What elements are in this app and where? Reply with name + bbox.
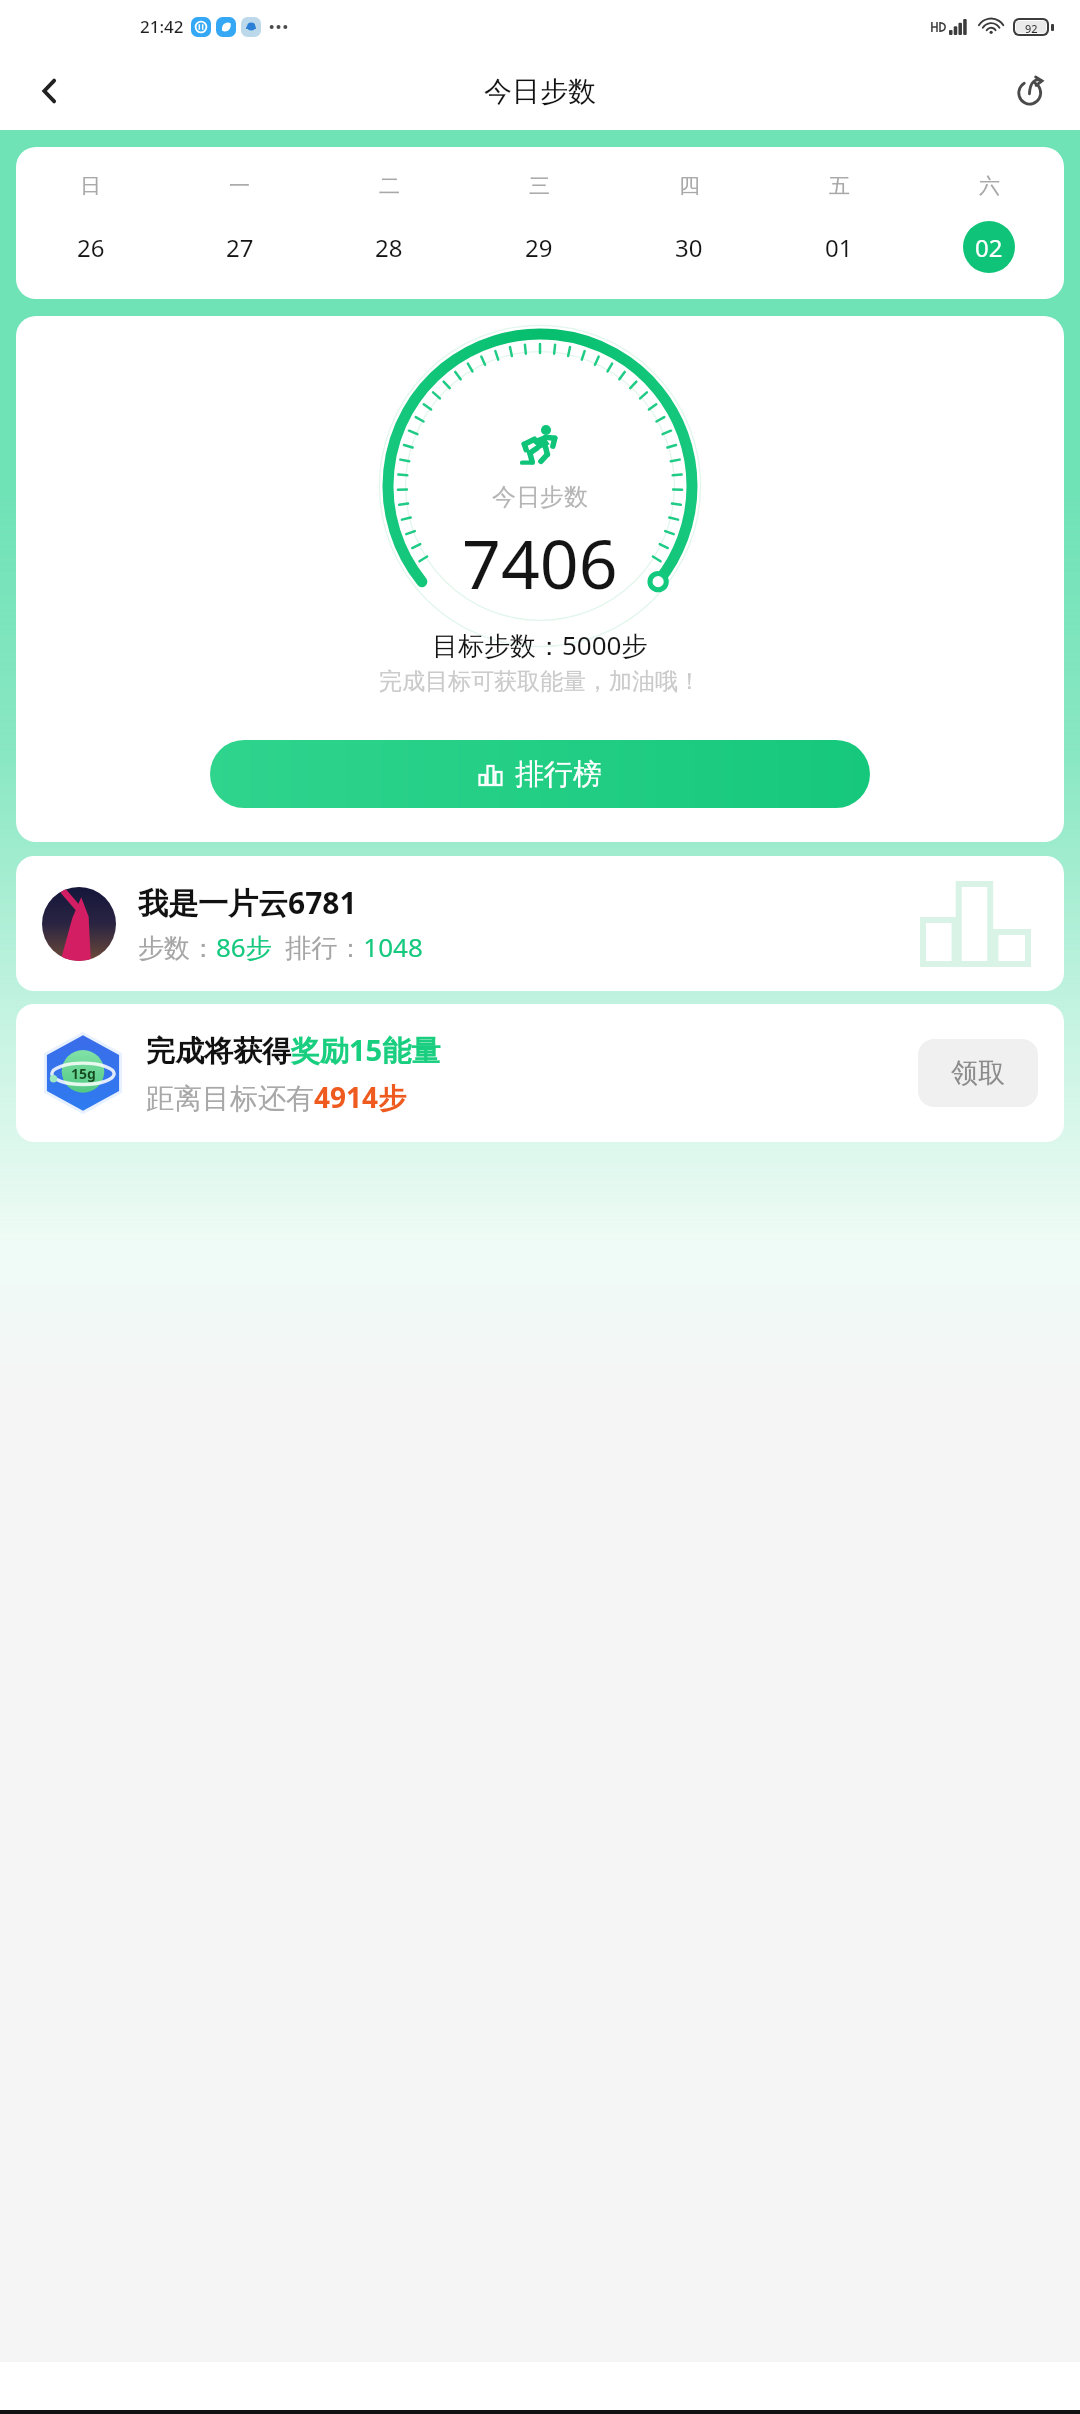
staticText: 五: [829, 173, 850, 199]
staticText: 92: [1025, 21, 1038, 33]
staticText: 四: [679, 173, 700, 199]
button[interactable]: 排行榜: [210, 740, 870, 808]
staticText: 30: [675, 231, 703, 264]
staticText: 02: [975, 231, 1003, 264]
button[interactable]: 日: [16, 147, 1064, 299]
staticText: 我是一片云6781: [138, 882, 357, 923]
staticText: 29: [525, 231, 553, 264]
staticText: 完成目标可获取能量，加油哦！: [379, 667, 701, 696]
staticText: 三: [529, 173, 550, 199]
button[interactable]: 30: [663, 221, 715, 273]
staticText: 15g: [71, 1064, 96, 1083]
button[interactable]: 27: [214, 221, 266, 273]
staticText: 目标步数：5000步: [432, 627, 648, 663]
staticText: 二: [379, 173, 400, 199]
staticText: 27: [226, 231, 254, 264]
staticText: 步数：86步 排行：1048: [138, 929, 423, 965]
staticText: 今日步数: [492, 482, 588, 512]
button[interactable]: 15g: [16, 1004, 1064, 1142]
staticText: 一: [229, 173, 250, 199]
button[interactable]: 02: [963, 221, 1015, 273]
staticText: 28: [375, 231, 403, 264]
button[interactable]: 28: [363, 221, 415, 273]
staticText: 今日步数: [484, 74, 596, 109]
staticText: 领取: [951, 1056, 1005, 1090]
button[interactable]: 领取: [918, 1039, 1038, 1107]
staticText: 7406: [462, 516, 618, 609]
staticText: 26: [77, 231, 105, 264]
staticText: 01: [825, 231, 853, 264]
button[interactable]: 29: [513, 221, 565, 273]
staticText: 21:42: [140, 15, 184, 38]
button[interactable]: 我是一片云6781: [16, 856, 1064, 991]
staticText: 排行榜: [515, 756, 602, 793]
staticText: 距离目标还有4914步: [146, 1078, 407, 1116]
staticText: 日: [80, 173, 101, 199]
staticText: 完成将获得奖励15能量: [146, 1030, 441, 1070]
button[interactable]: Share: [1002, 63, 1058, 119]
button[interactable]: 26: [65, 221, 117, 273]
button[interactable]: Back: [22, 63, 78, 119]
button[interactable]: 01: [813, 221, 865, 273]
staticText: 六: [979, 173, 1000, 199]
